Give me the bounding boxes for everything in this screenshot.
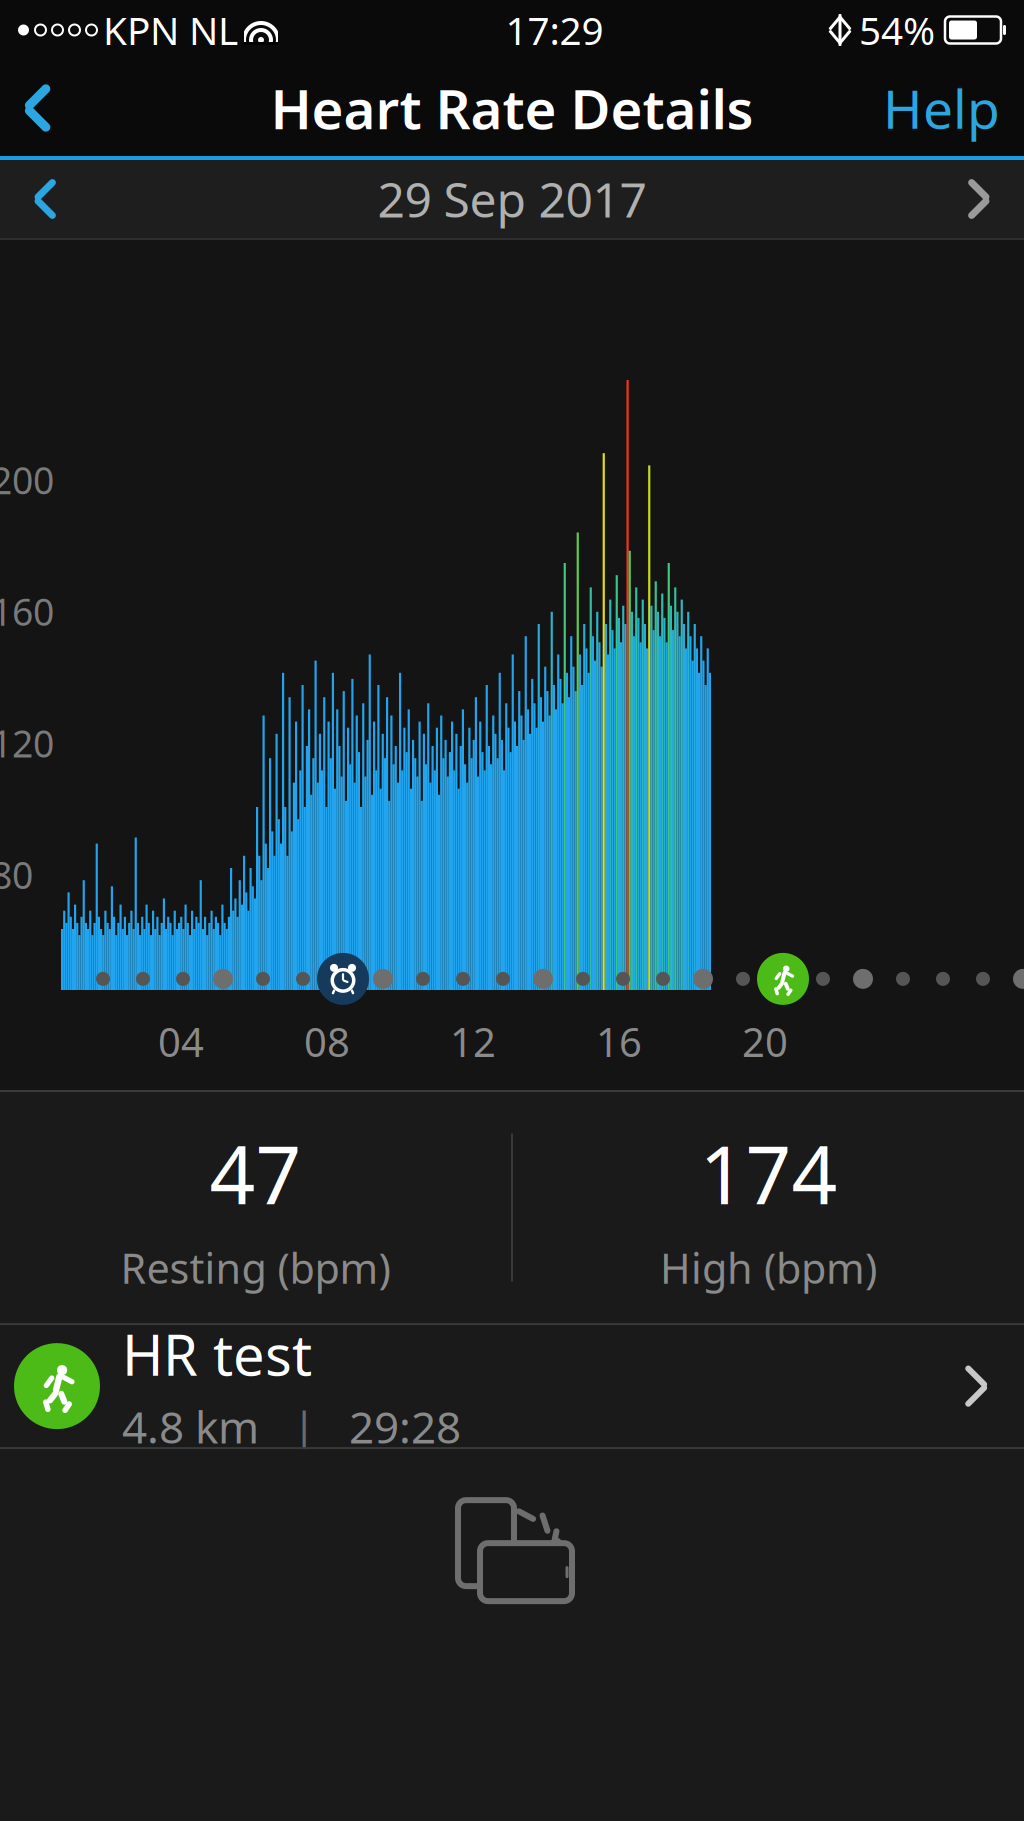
staticText: Heart Rate Details <box>270 72 753 144</box>
button[interactable]: Previous day <box>0 160 94 238</box>
button[interactable]: Next day <box>930 160 1024 238</box>
staticText: | <box>259 1397 349 1455</box>
staticText: 47 <box>209 1120 301 1226</box>
staticText: 54% <box>859 4 935 56</box>
staticText: 174 <box>699 1120 837 1226</box>
staticText: 4.8 km <box>122 1397 259 1455</box>
button[interactable]: HR test <box>0 1325 1024 1447</box>
staticText: 80 <box>0 850 33 899</box>
staticText: 08 <box>304 1015 350 1068</box>
staticText: 16 <box>596 1015 642 1068</box>
staticText: 29 Sep 2017 <box>377 167 646 231</box>
staticText: 20 <box>742 1015 788 1068</box>
button[interactable]: Back <box>0 60 77 156</box>
staticText: High (bpm) <box>660 1240 877 1295</box>
staticText: 29:28 <box>349 1397 461 1455</box>
staticText: 12 <box>450 1015 496 1068</box>
staticText: Help <box>883 73 1000 143</box>
button[interactable]: Help <box>859 60 1024 156</box>
staticText: 04 <box>158 1015 204 1068</box>
staticText: 120 <box>0 718 54 768</box>
staticText: 200 <box>0 455 54 505</box>
staticText: 160 <box>0 587 54 636</box>
staticText: HR test <box>122 1317 312 1391</box>
staticText: Resting (bpm) <box>120 1240 390 1295</box>
staticText: 17:29 <box>505 4 603 56</box>
staticText: KPN NL <box>103 4 238 56</box>
